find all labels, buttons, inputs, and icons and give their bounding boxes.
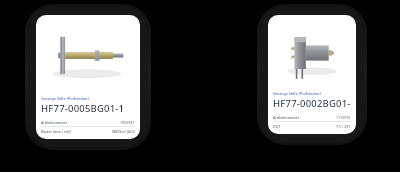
button[interactable]: Product image xyxy=(36,15,140,139)
staticText: 1099397 xyxy=(120,120,135,125)
staticText: HF77-0005BG01-1 xyxy=(41,102,125,115)
staticText: 1110970 xyxy=(336,115,351,120)
other: Product image xyxy=(36,15,140,96)
button[interactable]: Artikelnummer xyxy=(41,120,135,125)
staticText: Sonstige Stifte (Prüfstecker) xyxy=(273,91,321,96)
button[interactable]: Product image xyxy=(268,15,356,134)
staticText: HF77-0002BG01-2 xyxy=(273,97,351,110)
button[interactable]: Artikelnummer xyxy=(273,115,351,120)
staticText: WATSncl JACK xyxy=(112,129,135,134)
staticText: Sonstige Stifte (Prüfstecker) xyxy=(41,96,89,101)
staticText: Artikelnummer xyxy=(41,120,68,125)
button[interactable]: DUT xyxy=(273,124,351,129)
staticText: DUT xyxy=(273,124,281,129)
other: Product image xyxy=(268,15,356,91)
staticText: Artikelnummer xyxy=(273,115,300,120)
staticText: 7,5 / 295 xyxy=(336,124,351,129)
button[interactable]: Raster (mm / mil) xyxy=(41,129,135,134)
staticText: Raster (mm / mil) xyxy=(41,129,71,134)
